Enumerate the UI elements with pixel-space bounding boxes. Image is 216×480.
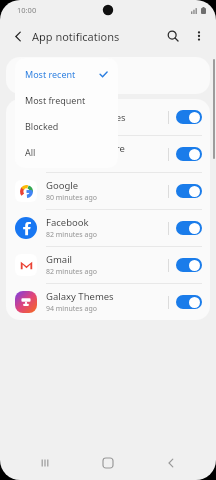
staticText: Google Play Store	[46, 142, 125, 155]
staticText: All	[25, 146, 108, 158]
staticText: Google	[46, 179, 79, 192]
button[interactable]: Galaxy Themes	[6, 284, 210, 320]
staticText: Samsung services	[46, 111, 126, 124]
button[interactable]: Toggle notifications	[176, 110, 202, 124]
button[interactable]: Toggle notifications	[176, 184, 202, 198]
button[interactable]: Gmail	[6, 247, 210, 283]
button[interactable]: Toggle notifications	[176, 147, 202, 161]
button[interactable]: Search	[160, 23, 186, 49]
staticText: 82 minutes ago	[46, 267, 97, 277]
button[interactable]: Google	[6, 173, 210, 209]
button[interactable]: Back	[6, 24, 30, 48]
button[interactable]: Google Play Store	[6, 136, 210, 172]
staticText: Blocked	[25, 120, 108, 132]
button[interactable]: Home	[90, 446, 126, 480]
staticText: 82 minutes ago	[46, 230, 97, 240]
staticText: Galaxy Themes	[46, 290, 114, 303]
button[interactable]	[6, 57, 210, 94]
staticText: Most recent	[25, 68, 99, 80]
button[interactable]: Toggle notifications	[176, 221, 202, 235]
staticText: 94 minutes ago	[46, 304, 97, 314]
button[interactable]: Toggle notifications	[176, 258, 202, 272]
button[interactable]: All	[15, 139, 118, 165]
button[interactable]: Recents	[27, 446, 63, 480]
button[interactable]: More options	[186, 23, 212, 49]
button[interactable]: Facebook	[6, 210, 210, 246]
button[interactable]: Blocked	[15, 113, 118, 139]
staticText: 80 minutes ago	[46, 193, 97, 203]
button[interactable]: Back	[153, 446, 189, 480]
button[interactable]: Toggle notifications	[176, 295, 202, 309]
button[interactable]: Most recent	[15, 61, 118, 87]
staticText: App notifications	[32, 29, 120, 44]
button[interactable]: Samsung services	[6, 99, 210, 135]
staticText: Gmail	[46, 253, 73, 266]
staticText: Most frequent	[25, 94, 108, 106]
staticText: 10:00	[17, 5, 37, 15]
staticText: Facebook	[46, 216, 89, 229]
button[interactable]: Most frequent	[15, 87, 118, 113]
